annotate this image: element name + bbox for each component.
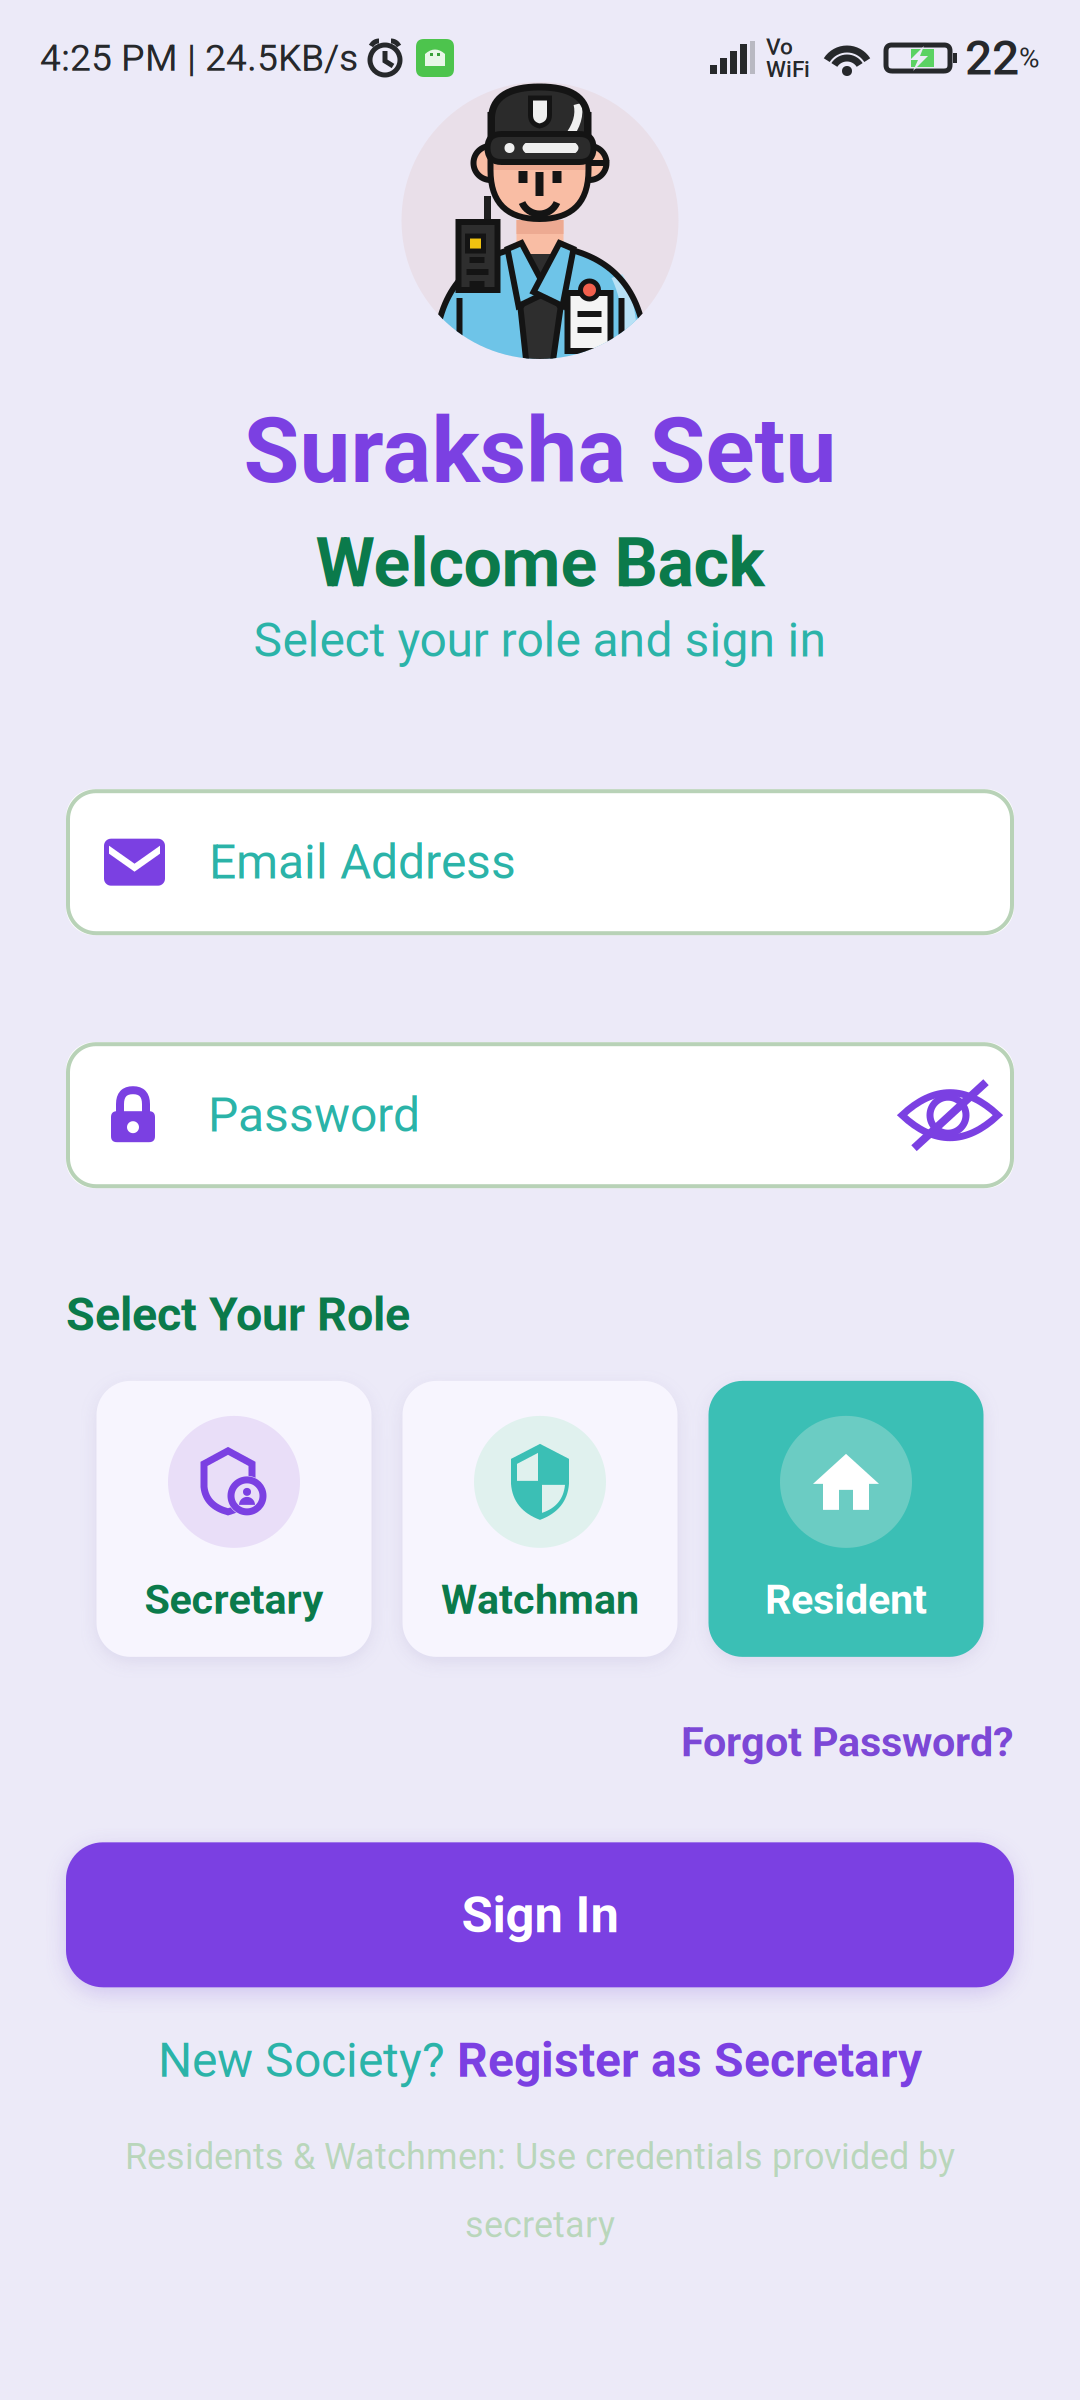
- button[interactable]: Register as Secretary: [457, 2032, 922, 2088]
- staticText: Email Address: [209, 834, 516, 890]
- staticText: Sign In: [461, 1885, 618, 1944]
- staticText: Suraksha Setu: [243, 398, 836, 504]
- button[interactable]: Watchman: [402, 1381, 677, 1657]
- staticText: Secretary: [144, 1575, 323, 1624]
- button[interactable]: Forgot Password?: [681, 1718, 1014, 1766]
- staticText: %: [1019, 42, 1040, 74]
- button[interactable]: Sign In: [66, 1842, 1014, 1987]
- button[interactable]: Secretary: [96, 1381, 371, 1657]
- staticText: Watchman: [441, 1575, 639, 1624]
- staticText: Select Your Role: [66, 1287, 410, 1342]
- button[interactable]: Email Address: [66, 789, 1014, 935]
- staticText: Resident: [765, 1575, 927, 1624]
- staticText: Welcome Back: [315, 523, 764, 603]
- staticText: Password: [208, 1087, 420, 1143]
- staticText: New Society?: [158, 2032, 457, 2088]
- staticText: 22: [965, 30, 1019, 86]
- staticText: 4:25 PM | 24.5KB/s: [40, 36, 358, 80]
- staticText: Select your role and sign in: [253, 612, 826, 668]
- staticText: secretary: [465, 2204, 615, 2246]
- staticText: WiFi: [766, 56, 810, 83]
- staticText: Residents & Watchmen: Use credentials pr…: [125, 2136, 955, 2178]
- staticText: Vo: [766, 33, 793, 60]
- staticText: Forgot Password?: [681, 1718, 1014, 1766]
- staticText: Register as Secretary: [457, 2032, 922, 2088]
- button[interactable]: Resident: [708, 1381, 983, 1657]
- button[interactable]: Password: [66, 1042, 1014, 1188]
